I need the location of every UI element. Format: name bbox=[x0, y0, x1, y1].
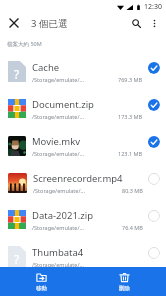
button[interactable]: Move bbox=[0, 267, 83, 296]
staticText: /Storage/emulate/... bbox=[32, 224, 84, 231]
staticText: 刪除 bbox=[119, 285, 130, 292]
staticText: 769.3 MB bbox=[118, 76, 143, 83]
staticText: 3 個已選 bbox=[31, 17, 68, 30]
staticText: Document.zip bbox=[32, 98, 94, 111]
staticText: Cache bbox=[32, 61, 60, 74]
staticText: 檔案大約 50M bbox=[7, 40, 42, 48]
staticText: ? bbox=[14, 251, 20, 267]
button[interactable]: Document.zip bbox=[0, 90, 166, 127]
staticText: 173.3 MB bbox=[118, 113, 143, 120]
staticText: 12:30 bbox=[144, 2, 162, 12]
staticText: Screenrecorder.mp4 bbox=[33, 172, 123, 185]
button[interactable]: Not selected bbox=[147, 172, 160, 185]
staticText: Data-2021.zip bbox=[32, 209, 94, 222]
button[interactable]: Not selected bbox=[147, 209, 160, 222]
button[interactable]: More options bbox=[145, 14, 163, 32]
button[interactable]: Selected bbox=[147, 61, 160, 74]
staticText: /Storage/emulate/... bbox=[32, 76, 84, 83]
staticText: /Storage/emulate/... bbox=[33, 187, 85, 194]
button[interactable]: Movie.mkv bbox=[0, 127, 166, 164]
button[interactable]: Close selection bbox=[5, 14, 23, 32]
staticText: 80.3 MB bbox=[122, 187, 143, 194]
button[interactable]: Screenrecorder.mp4 bbox=[0, 164, 166, 201]
staticText: /Storage/emulate/... bbox=[32, 150, 84, 157]
staticText: 76.4 MB bbox=[122, 224, 143, 231]
button[interactable]: Data-2021.zip bbox=[0, 201, 166, 238]
button[interactable]: ? bbox=[0, 238, 166, 275]
staticText: /Storage/emulate/... bbox=[32, 261, 84, 268]
staticText: 移動 bbox=[36, 285, 47, 292]
button[interactable]: Delete bbox=[83, 267, 166, 296]
staticText: ? bbox=[14, 66, 20, 82]
button[interactable]: Selected bbox=[147, 135, 160, 148]
button[interactable]: Not selected bbox=[147, 246, 160, 259]
staticText: /Storage/emulate/... bbox=[32, 113, 84, 120]
staticText: 123.1 MB bbox=[118, 150, 143, 157]
button[interactable]: Search bbox=[127, 14, 145, 32]
staticText: Thumbata4 bbox=[32, 246, 84, 259]
staticText: Movie.mkv bbox=[32, 135, 81, 148]
button[interactable]: ? bbox=[0, 53, 166, 90]
button[interactable]: Selected bbox=[147, 98, 160, 111]
